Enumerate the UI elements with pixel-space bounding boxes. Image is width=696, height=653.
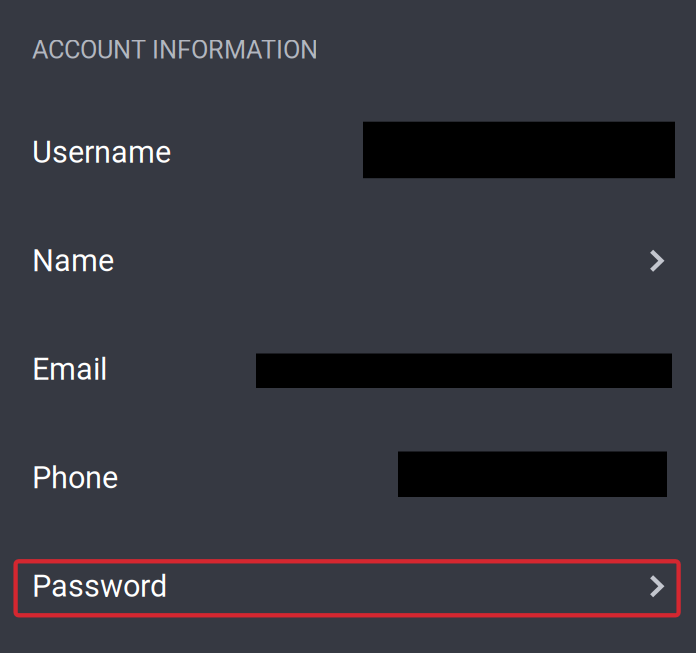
button[interactable]: Name xyxy=(0,206,696,315)
button[interactable]: Email xyxy=(0,315,696,423)
staticText: ACCOUNT INFORMATION xyxy=(32,35,318,65)
staticText: Password xyxy=(32,568,167,604)
staticText: Email xyxy=(32,351,107,387)
button[interactable]: Phone xyxy=(0,423,696,532)
button[interactable]: Password xyxy=(0,532,696,640)
button[interactable]: Username xyxy=(0,98,696,206)
staticText: Name xyxy=(32,243,114,279)
staticText: Phone xyxy=(32,460,118,496)
staticText: Username xyxy=(32,134,171,170)
